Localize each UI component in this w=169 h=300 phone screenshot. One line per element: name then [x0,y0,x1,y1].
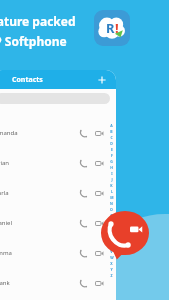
button[interactable]: Contacts [0,70,116,89]
button[interactable]: Video call Frank [95,279,104,288]
button[interactable]: Daniel [0,208,116,238]
button[interactable]: App icon [94,10,130,46]
staticText: Brian [0,159,10,167]
staticText: S [111,231,113,236]
button[interactable]: Video call Emma [95,249,104,258]
button[interactable]: Emma [0,238,116,268]
staticText: L [111,189,113,194]
staticText: C [110,135,113,140]
button[interactable]: Video call Carla [95,189,104,198]
staticText: I [111,171,113,176]
button[interactable]: Video call Brian [95,159,104,168]
button[interactable]: Amanda [0,118,116,148]
staticText: Daniel [0,219,12,227]
button[interactable]: Frank [0,268,116,298]
staticText: Q [110,219,113,224]
staticText: ! [115,19,119,37]
staticText: W [110,255,114,260]
button[interactable]: Call Daniel [79,219,88,228]
button[interactable]: Alphabet index [107,123,116,279]
staticText: H [110,165,113,170]
button[interactable]: New call [100,210,150,260]
button[interactable]: Call Amanda [79,129,88,138]
staticText: K [110,183,113,188]
staticText: Contacts [12,75,43,85]
staticText: T [110,237,113,242]
button[interactable]: Call Frank [79,279,88,288]
staticText: Amanda [0,129,18,137]
staticText: X [110,261,113,266]
staticText: Feature packed [0,13,76,29]
button[interactable]: Call Brian [79,159,88,168]
staticText: Carla [0,189,9,197]
button[interactable]: Add contact [96,74,108,86]
staticText: P [110,213,113,218]
button[interactable]: Brian [0,148,116,178]
staticText: Emma [0,249,12,257]
staticText: R [110,225,113,230]
staticText: Z [110,273,113,278]
button[interactable]: Call Carla [79,189,88,198]
staticText: M [110,195,114,200]
staticText: V [110,249,113,254]
staticText: J [111,177,113,182]
staticText: F [111,153,113,158]
staticText: E [111,147,113,152]
button[interactable]: Call Emma [79,249,88,258]
button[interactable]: Video call Amanda [95,129,104,138]
button[interactable]: Carla [0,178,116,208]
staticText: Y [110,267,113,272]
staticText: B [110,129,113,134]
staticText: G [110,159,113,164]
staticText: Frank [0,279,10,287]
staticText: SIP Softphone [0,33,67,49]
staticText: O [110,207,113,212]
staticText: D [110,141,113,146]
button[interactable]: Video call Daniel [95,219,104,228]
staticText: R [106,19,115,37]
staticText: A [110,123,113,128]
staticText: N [110,201,113,206]
